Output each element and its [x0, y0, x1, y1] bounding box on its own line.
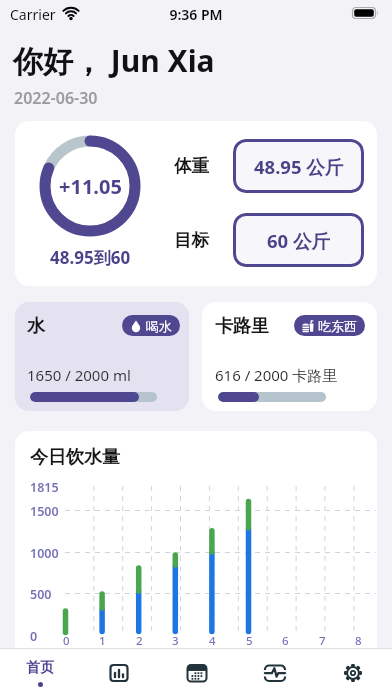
staticText: 8	[355, 633, 362, 648]
staticText: 7	[319, 633, 326, 648]
staticText: 4	[209, 633, 216, 648]
button[interactable]	[236, 649, 314, 696]
staticText: 吃东西	[318, 318, 357, 334]
button[interactable]: 48.95 公斤	[233, 139, 364, 193]
staticText: 3	[172, 633, 179, 648]
staticText: 60 公斤	[267, 228, 330, 253]
button[interactable]	[79, 649, 158, 696]
button[interactable]	[158, 649, 236, 696]
button[interactable]: 吃东西	[302, 315, 357, 336]
staticText: 5	[246, 633, 253, 648]
staticText: 1815	[30, 479, 59, 495]
staticText: +11.05	[59, 173, 122, 200]
button[interactable]: 喝水	[130, 315, 172, 336]
staticText: 你好， Jun Xia	[13, 40, 215, 81]
staticText: 9:36 PM	[168, 5, 224, 24]
staticText: 0	[30, 628, 38, 644]
staticText: 水	[27, 315, 45, 338]
button[interactable]	[314, 649, 392, 696]
staticText: 首页	[26, 659, 54, 677]
staticText: 6	[282, 633, 289, 648]
staticText: 2022-06-30	[14, 87, 98, 109]
button[interactable]: 60 公斤	[233, 213, 364, 267]
staticText: 616 / 2000 卡路里	[215, 365, 338, 385]
staticText: 1500	[30, 503, 59, 519]
staticText: 2	[136, 633, 143, 648]
staticText: 喝水	[146, 318, 172, 334]
staticText: 1	[99, 633, 106, 648]
staticText: 48.95 公斤	[254, 154, 344, 179]
button[interactable]: 首页	[0, 649, 79, 696]
staticText: 卡路里	[215, 315, 269, 338]
staticText: 48.95到60	[50, 246, 131, 269]
staticText: 500	[30, 586, 52, 602]
staticText: 0	[63, 633, 70, 648]
button[interactable]: 水	[15, 302, 189, 411]
staticText: 1000	[30, 545, 59, 561]
staticText: 目标	[174, 229, 209, 251]
staticText: Carrier	[10, 5, 56, 24]
staticText: 今日饮水量	[30, 446, 120, 469]
staticText: 体重	[174, 155, 209, 177]
button[interactable]: 卡路里	[202, 302, 377, 411]
staticText: 1650 / 2000 ml	[27, 365, 131, 385]
